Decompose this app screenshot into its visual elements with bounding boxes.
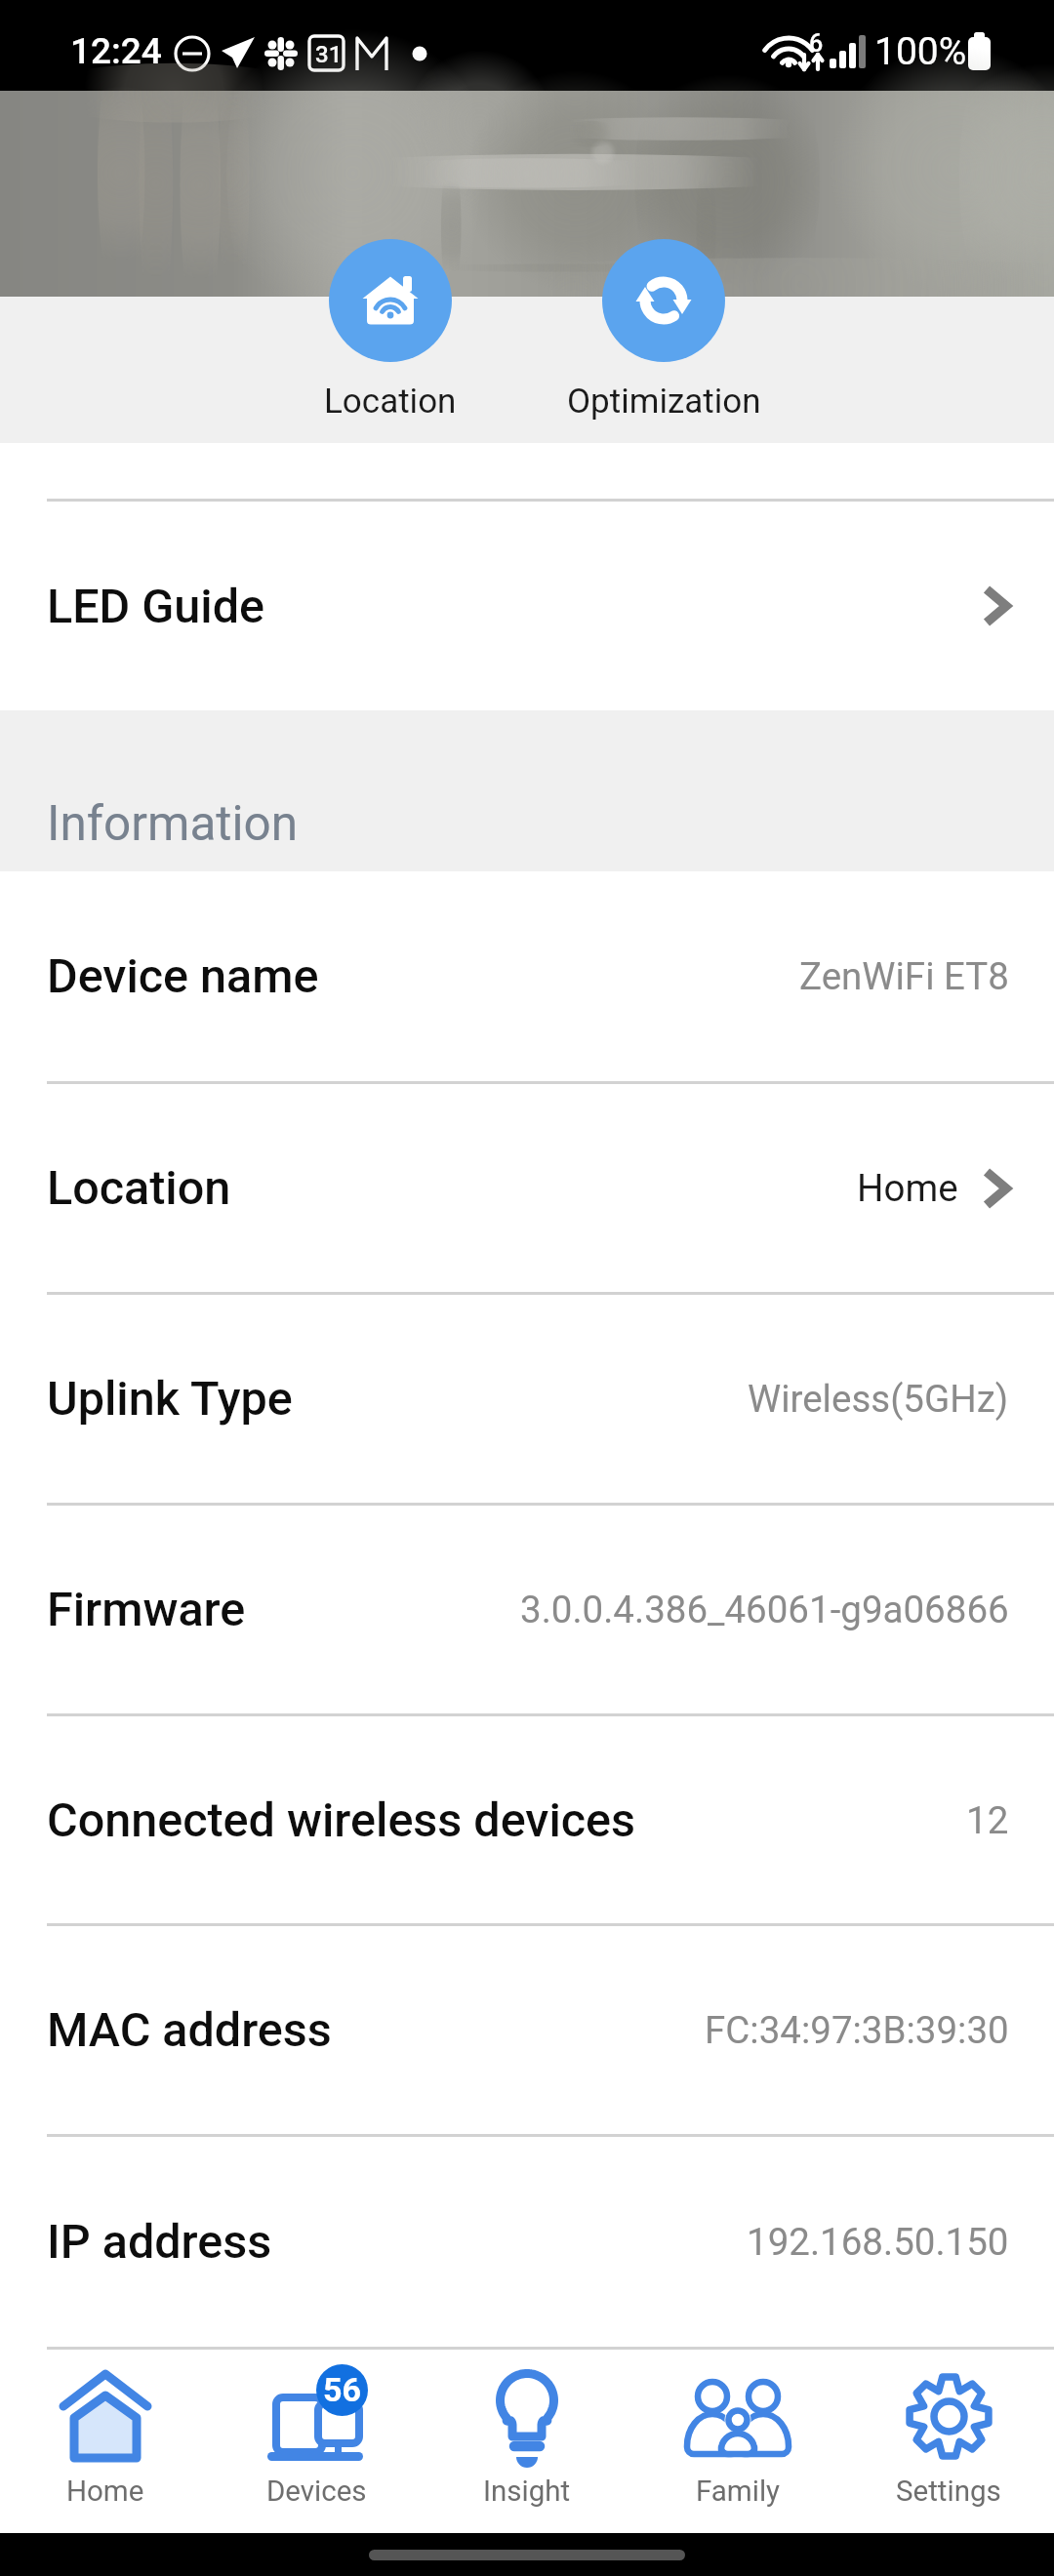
staticText: Uplink Type bbox=[47, 1371, 293, 1427]
staticText: 12 bbox=[966, 1798, 1009, 1842]
button[interactable]: Settings bbox=[843, 2350, 1054, 2533]
button[interactable]: Location bbox=[195, 239, 586, 422]
staticText: Family bbox=[696, 2475, 781, 2509]
staticText: Information bbox=[47, 795, 299, 852]
staticText: Home bbox=[66, 2475, 144, 2509]
staticText: 31 bbox=[315, 41, 343, 68]
staticText: 6 bbox=[809, 29, 824, 58]
staticText: ZenWiFi ET8 bbox=[799, 954, 1009, 998]
staticText: LED Guide bbox=[47, 579, 264, 634]
staticText: Connected wireless devices bbox=[47, 1792, 636, 1848]
button[interactable]: Home bbox=[0, 2350, 211, 2533]
staticText: Devices bbox=[266, 2475, 367, 2509]
button[interactable]: Location bbox=[0, 1084, 1054, 1292]
staticText: 192.168.50.150 bbox=[747, 2220, 1009, 2264]
staticText: IP address bbox=[47, 2214, 272, 2270]
staticText: 100% bbox=[874, 29, 967, 74]
staticText: Home bbox=[857, 1166, 958, 1210]
staticText: MAC address bbox=[47, 2002, 332, 2058]
staticText: 12:24 bbox=[70, 30, 162, 72]
button[interactable]: Firmware bbox=[0, 1506, 1054, 1713]
staticText: Insight bbox=[483, 2475, 571, 2509]
staticText: Device name bbox=[47, 948, 319, 1004]
staticText: Optimization bbox=[567, 382, 761, 422]
button[interactable]: Uplink Type bbox=[0, 1295, 1054, 1503]
button[interactable]: Device name bbox=[0, 871, 1054, 1081]
staticText: Location bbox=[47, 1160, 231, 1216]
button[interactable]: Optimization bbox=[468, 239, 859, 422]
staticText: FC:34:97:3B:39:30 bbox=[705, 2008, 1009, 2052]
staticText: 56 bbox=[323, 2370, 362, 2409]
staticText: 3.0.0.4.386_46061-g9a06866 bbox=[520, 1588, 1009, 1631]
button[interactable]: Connected wireless devices bbox=[0, 1716, 1054, 1923]
button[interactable]: Insight bbox=[422, 2350, 632, 2533]
staticText: Wireless(5GHz) bbox=[748, 1377, 1009, 1421]
staticText: Firmware bbox=[47, 1582, 246, 1637]
button[interactable]: MAC address bbox=[0, 1926, 1054, 2134]
button[interactable]: LED Guide bbox=[0, 502, 1054, 710]
button[interactable]: 56 bbox=[211, 2350, 422, 2533]
staticText: Settings bbox=[896, 2475, 1001, 2509]
staticText: Location bbox=[324, 382, 457, 422]
button[interactable]: Family bbox=[632, 2350, 843, 2533]
button[interactable]: IP address bbox=[0, 2137, 1054, 2347]
